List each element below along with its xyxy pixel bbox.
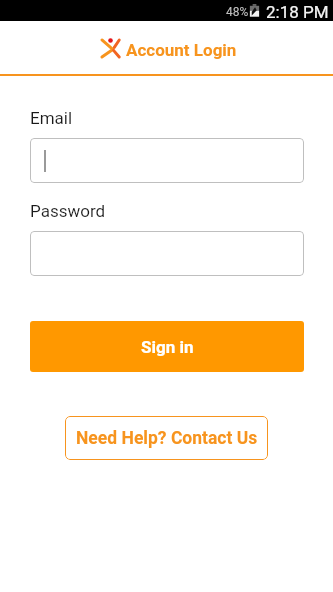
staticText: Account Login [126,40,237,60]
staticText: 2:18 PM [266,2,329,22]
other: App logo [101,39,120,58]
button[interactable]: Password input field [30,231,304,276]
staticText: 48% [226,5,249,19]
staticText: Password [30,201,106,221]
button[interactable]: Email input field [30,138,304,183]
other: Battery 48 percent [249,3,260,17]
button[interactable]: Sign in [30,321,304,372]
staticText: Need Help? Contact Us [76,428,258,449]
staticText: Sign in [141,337,194,357]
button[interactable]: Need Help? Contact Us [65,416,268,460]
staticText: Email [30,108,73,128]
